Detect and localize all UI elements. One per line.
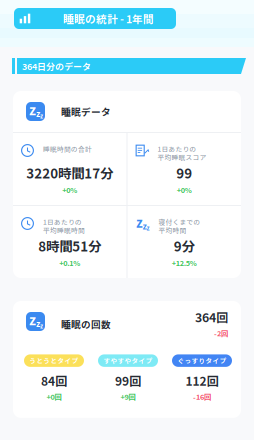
staticText: 9分: [174, 236, 195, 255]
staticText: +0.1%: [59, 257, 80, 268]
staticText: 睡眠時間の合計: [43, 144, 92, 154]
staticText: 364日分のデータ: [22, 59, 91, 72]
staticText: -16回: [193, 391, 211, 402]
staticText: +12.5%: [172, 257, 197, 268]
staticText: 1日あたりの: [43, 217, 82, 227]
staticText: 112回: [185, 372, 218, 389]
staticText: 平均睡眠時間: [43, 225, 85, 235]
staticText: z: [40, 111, 43, 120]
staticText: 99回: [115, 372, 141, 389]
staticText: うとうとタイプ: [29, 356, 78, 365]
staticText: z: [136, 213, 143, 231]
staticText: z: [40, 321, 43, 330]
staticText: +0回: [46, 391, 61, 402]
staticText: 364回: [195, 308, 228, 326]
staticText: 平均時間: [158, 225, 186, 235]
staticText: すやすやタイプ: [103, 356, 152, 365]
staticText: +0%: [177, 184, 192, 195]
staticText: z: [36, 107, 40, 119]
staticText: z: [36, 317, 40, 329]
staticText: 3220時間17分: [26, 163, 113, 182]
staticText: ぐっすりタイプ: [177, 356, 226, 365]
staticText: -2回: [214, 328, 228, 338]
staticText: 8時間51分: [38, 236, 101, 255]
staticText: 睡眠の統計 - 1年間: [63, 11, 154, 26]
staticText: 睡眠データ: [61, 104, 111, 118]
staticText: 1日あたりの: [157, 144, 196, 154]
staticText: +9回: [120, 391, 135, 402]
staticText: 寝付くまでの: [158, 217, 200, 227]
button[interactable]: 睡眠の統計 - 1年間: [14, 8, 176, 29]
staticText: 84回: [41, 372, 67, 389]
staticText: z: [29, 309, 36, 329]
staticText: z: [142, 219, 146, 232]
staticText: 睡眠の回数: [61, 317, 111, 331]
staticText: z: [147, 224, 150, 232]
staticText: z: [29, 99, 36, 119]
staticText: +0%: [62, 184, 77, 195]
staticText: 平均睡眠スコア: [157, 152, 206, 162]
staticText: 99: [176, 163, 192, 182]
